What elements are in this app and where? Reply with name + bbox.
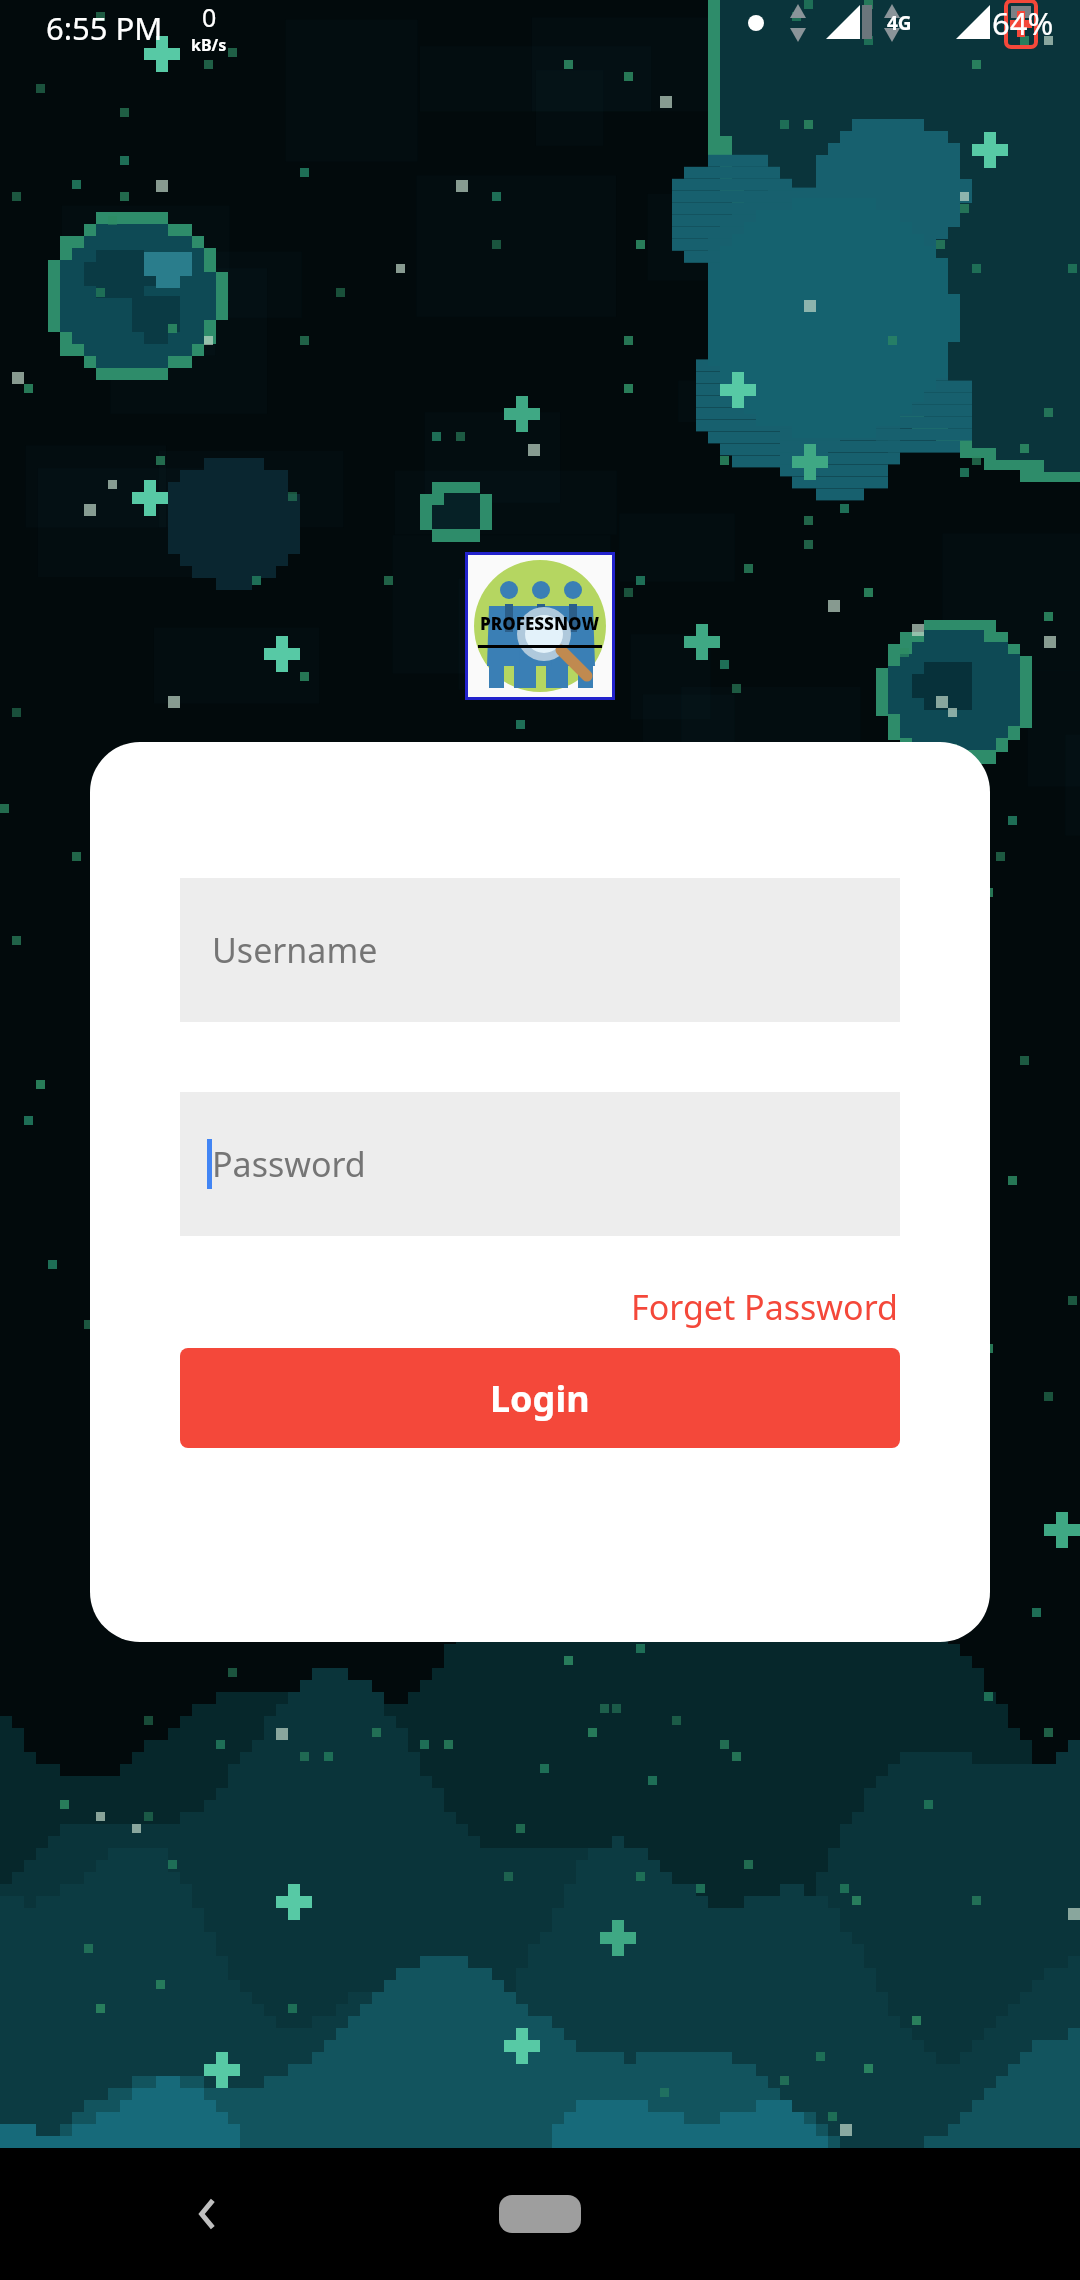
staticText: 64% <box>992 2 1054 44</box>
staticText: Login <box>490 1374 590 1423</box>
staticText: kB/s <box>191 34 227 56</box>
staticText: 4G <box>887 10 912 36</box>
button[interactable]: Login <box>180 1348 900 1448</box>
button[interactable]: Home <box>480 2184 600 2244</box>
button[interactable]: Back <box>172 2178 244 2250</box>
staticText: Password <box>212 1141 366 1187</box>
staticText: Username <box>212 927 378 973</box>
staticText: Forget Password <box>631 1284 898 1330</box>
button[interactable]: Username <box>180 878 900 1022</box>
staticText: 0 <box>202 0 217 34</box>
button[interactable]: Forget Password <box>625 1278 904 1336</box>
button[interactable]: Password <box>180 1092 900 1236</box>
staticText: 6:55 PM <box>46 7 163 49</box>
staticText: PROFESSNOW <box>480 612 600 635</box>
